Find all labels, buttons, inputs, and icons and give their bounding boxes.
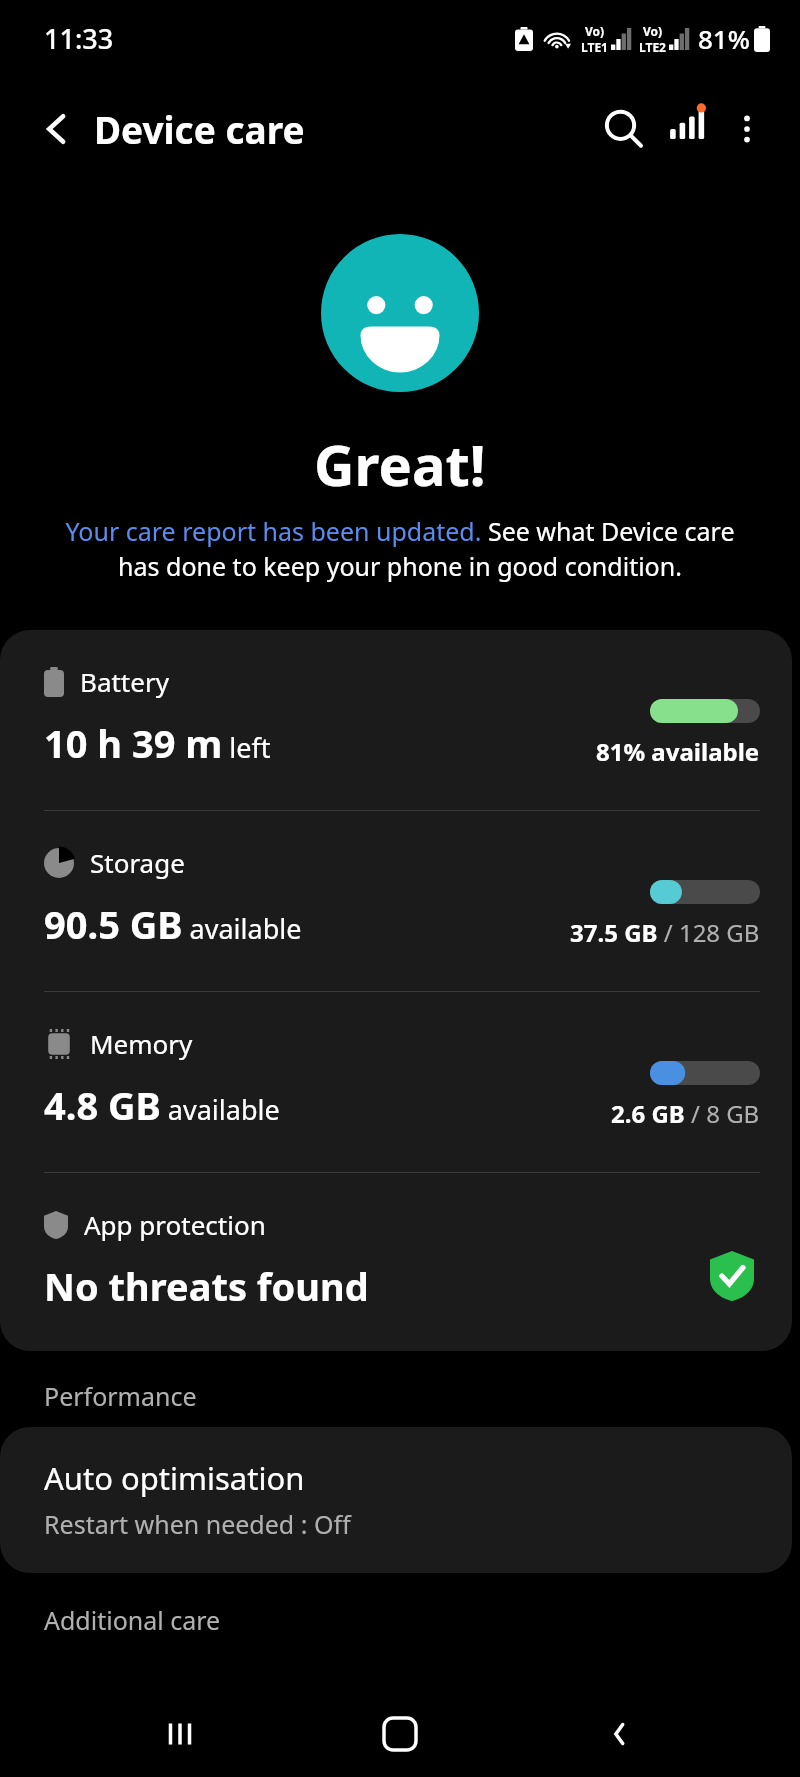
button[interactable]: Home	[360, 1694, 440, 1774]
staticText: 11:33	[44, 20, 114, 57]
staticText: Additional care	[44, 1603, 221, 1637]
button[interactable]: Care report	[654, 98, 716, 160]
staticText: Device care	[94, 104, 305, 154]
button[interactable]: Recent apps	[140, 1694, 220, 1774]
staticText: Battery	[80, 664, 169, 699]
button[interactable]: More options	[716, 98, 778, 160]
staticText: Performance	[44, 1379, 197, 1413]
staticText: LTE1	[581, 39, 608, 55]
staticText: 4.8 GB available	[44, 1079, 280, 1131]
staticText: Storage	[90, 845, 185, 880]
staticText: Your care report has been updated. See w…	[56, 514, 744, 584]
button[interactable]: Auto optimisation	[0, 1427, 792, 1573]
staticText: Memory	[90, 1026, 193, 1061]
staticText: 90.5 GB available	[44, 898, 302, 950]
staticText: 37.5 GB / 128 GB	[570, 916, 760, 949]
staticText: App protection	[84, 1207, 266, 1242]
staticText: Vo)	[643, 23, 663, 39]
button[interactable]: App protection	[0, 1173, 792, 1351]
button[interactable]: Back	[580, 1694, 660, 1774]
staticText: Restart when needed : Off	[44, 1507, 351, 1541]
staticText: 10 h 39 m left	[44, 717, 271, 769]
button[interactable]: Battery	[0, 630, 792, 810]
staticText: No threats found	[44, 1260, 369, 1312]
staticText: 81% available	[596, 735, 760, 768]
staticText: LTE2	[639, 39, 666, 55]
staticText: Auto optimisation	[44, 1457, 305, 1499]
button[interactable]: Memory	[0, 992, 792, 1172]
staticText: Vo)	[585, 23, 605, 39]
button[interactable]: Storage	[0, 811, 792, 991]
staticText: 2.6 GB / 8 GB	[611, 1097, 760, 1130]
button[interactable]: Back	[26, 100, 84, 158]
button[interactable]: Search	[592, 98, 654, 160]
staticText: 81%	[698, 21, 750, 56]
staticText: Great!	[314, 426, 486, 502]
